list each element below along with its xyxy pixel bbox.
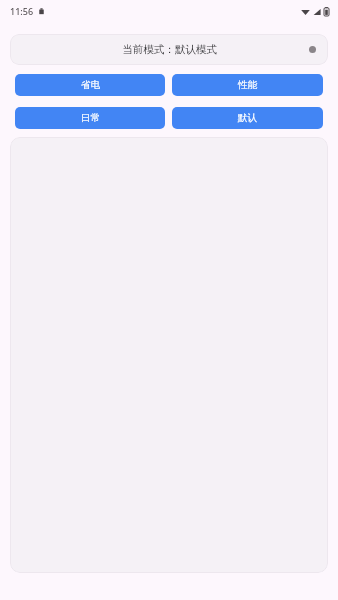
staticText: 默认 (238, 112, 257, 124)
button[interactable]: 性能 (172, 74, 323, 96)
button[interactable]: 日常 (15, 107, 165, 129)
staticText: 性能 (238, 79, 257, 91)
staticText: 省电 (81, 79, 100, 91)
staticText: 当前模式：默认模式 (122, 43, 217, 56)
button[interactable]: 当前模式：默认模式 (10, 34, 328, 65)
staticText: 日常 (81, 112, 100, 124)
button[interactable]: 省电 (15, 74, 165, 96)
button[interactable]: 默认 (172, 107, 323, 129)
staticText: 11:56 (10, 5, 34, 17)
